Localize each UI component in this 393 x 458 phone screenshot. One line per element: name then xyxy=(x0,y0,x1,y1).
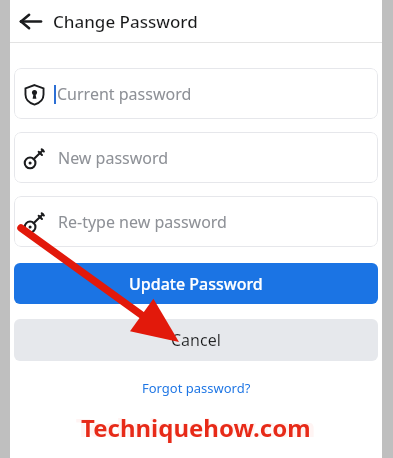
staticText: Forgot password? xyxy=(142,379,251,397)
staticText: Change Password xyxy=(53,10,198,33)
button[interactable]: Current password xyxy=(14,68,378,119)
staticText: Current password xyxy=(57,83,192,105)
button[interactable]: Back xyxy=(12,3,48,39)
staticText: Re-type new password xyxy=(58,211,227,233)
staticText: Techniquehow.com xyxy=(81,411,311,444)
button[interactable]: Update Password xyxy=(14,263,378,304)
button[interactable]: Re-type new password xyxy=(14,196,378,247)
staticText: New password xyxy=(58,147,169,169)
staticText: Cancel xyxy=(171,329,221,351)
staticText: Update Password xyxy=(129,273,263,295)
staticText: Techniquehow.com xyxy=(76,410,316,444)
button[interactable]: New password xyxy=(14,132,378,183)
button[interactable]: Cancel xyxy=(14,319,378,361)
button[interactable]: Forgot password? xyxy=(136,377,257,399)
